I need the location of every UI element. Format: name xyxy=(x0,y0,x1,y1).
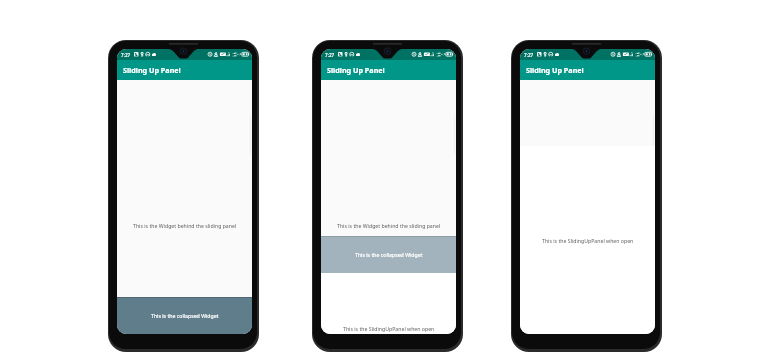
staticText: 7:27 xyxy=(325,52,335,58)
staticText: This is the Widget behind the sliding pa… xyxy=(133,222,237,229)
staticText: This is the SlidingUpPanel when open xyxy=(343,325,435,332)
staticText: This is the Widget behind the sliding pa… xyxy=(337,222,441,229)
staticText: 7:27 xyxy=(524,52,534,58)
button[interactable]: This is the collapsed Widget xyxy=(321,236,456,273)
staticText: Sliding Up Panel xyxy=(526,65,584,75)
button[interactable]: This is the SlidingUpPanel when open xyxy=(520,146,655,334)
staticText: Sliding Up Panel xyxy=(123,65,181,75)
staticText: This is the collapsed Widget xyxy=(151,312,219,319)
staticText: This is the collapsed Widget xyxy=(355,251,423,258)
staticText: 7:27 xyxy=(121,52,131,58)
staticText: Sliding Up Panel xyxy=(327,65,385,75)
staticText: This is the SlidingUpPanel when open xyxy=(542,237,634,244)
button[interactable]: This is the collapsed Widget xyxy=(117,297,252,334)
